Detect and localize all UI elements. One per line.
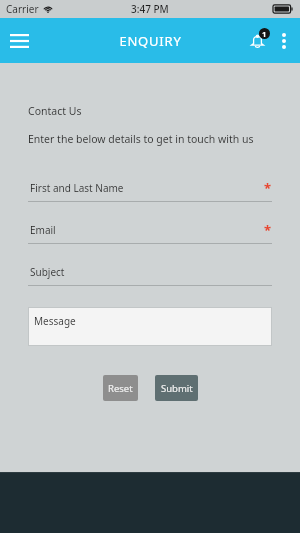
staticText: Subject (30, 265, 65, 279)
button[interactable]: Message (28, 307, 272, 346)
button[interactable]: Notifications, 1 new (243, 27, 271, 55)
button[interactable]: Subject (28, 265, 272, 286)
button[interactable]: Email (28, 223, 272, 244)
staticText: 3:47 PM (131, 2, 169, 16)
staticText: Reset (108, 382, 133, 395)
staticText: Carrier (6, 2, 39, 16)
button[interactable]: Open navigation menu (4, 26, 34, 56)
staticText: Contact Us (28, 104, 82, 118)
button[interactable]: Reset (103, 375, 138, 401)
staticText: * (264, 179, 272, 197)
staticText: Message (34, 314, 76, 328)
button[interactable]: Submit (155, 375, 198, 401)
staticText: Email (30, 223, 56, 237)
button[interactable]: First and Last Name (28, 181, 272, 202)
staticText: Enter the below details to get in touch … (28, 132, 254, 146)
staticText: * (264, 221, 272, 239)
staticText: 1 (262, 29, 267, 39)
staticText: First and Last Name (30, 181, 124, 195)
button[interactable]: More options (271, 28, 297, 54)
staticText: Submit (161, 382, 193, 395)
staticText: ENQUIRY (119, 32, 182, 50)
